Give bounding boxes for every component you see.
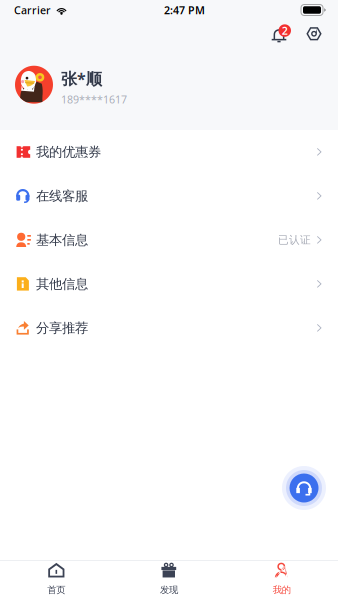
staticText: 张*顺 (61, 68, 102, 89)
staticText: 分享推荐 (36, 320, 88, 336)
staticText: 我的优惠券 (36, 144, 101, 160)
button[interactable]: Notifications (269, 23, 293, 43)
button[interactable]: Customer service (279, 463, 329, 513)
button[interactable]: 基本信息 (0, 218, 338, 262)
button[interactable]: 发现 (113, 561, 225, 600)
button[interactable]: 我的优惠券 (0, 130, 338, 174)
button[interactable]: Settings (304, 22, 324, 44)
staticText: Carrier (14, 3, 51, 17)
staticText: 发现 (160, 584, 178, 596)
staticText: 基本信息 (36, 232, 88, 248)
button[interactable]: 我的 (225, 561, 338, 600)
button[interactable]: 在线客服 (0, 174, 338, 218)
staticText: 189****1617 (61, 92, 127, 106)
staticText: 首页 (47, 584, 65, 596)
staticText: 2:47 PM (164, 3, 205, 17)
button[interactable]: 首页 (0, 561, 113, 600)
staticText: 在线客服 (36, 188, 88, 204)
staticText: 我的 (273, 584, 291, 596)
button[interactable]: 分享推荐 (0, 306, 338, 350)
staticText: 2 (282, 23, 288, 38)
staticText: 其他信息 (36, 276, 88, 292)
staticText: 已认证 (278, 233, 311, 246)
button[interactable]: 其他信息 (0, 262, 338, 306)
